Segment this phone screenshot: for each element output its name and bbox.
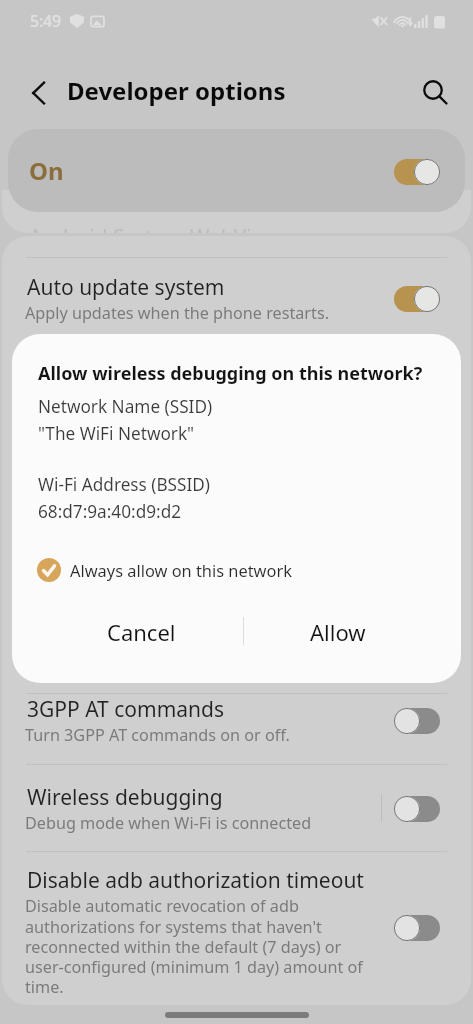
- staticText: Android System WebView: [29, 223, 280, 233]
- staticText: "The WiFi Network": [38, 422, 195, 445]
- button[interactable]: Navigate up: [17, 72, 59, 114]
- staticText: Cancel: [107, 617, 176, 647]
- button[interactable]: 3GPP AT commands: [0, 685, 473, 736]
- button[interactable]: Disable adb authorization timeout: [0, 856, 473, 987]
- staticText: 68:d7:9a:40:d9:d2: [38, 500, 182, 523]
- staticText: Debug mode when Wi-Fi is connected: [25, 812, 375, 834]
- staticText: Wi-Fi Address (BSSID): [38, 473, 211, 496]
- button[interactable]: Allow: [229, 601, 446, 663]
- staticText: Network Name (SSID): [38, 395, 213, 418]
- staticText: Auto update system: [27, 273, 225, 302]
- button[interactable]: Auto update system: [0, 263, 473, 314]
- staticText: Always allow on this network: [70, 559, 292, 581]
- button[interactable]: Wireless debugging: [0, 773, 473, 824]
- staticText: 5:49: [30, 10, 62, 32]
- staticText: Apply updates when the phone restarts.: [25, 302, 375, 324]
- staticText: Disable automatic revocation of adb auth…: [25, 895, 375, 997]
- staticText: Developer options: [67, 74, 286, 107]
- button[interactable]: Always allow on this network: [37, 558, 292, 582]
- button[interactable]: On: [8, 129, 465, 212]
- button[interactable]: Cancel: [26, 601, 257, 663]
- staticText: 3GPP AT commands: [27, 695, 225, 724]
- staticText: On: [29, 154, 64, 187]
- staticText: Allow wireless debugging on this network…: [38, 361, 423, 386]
- staticText: Allow: [310, 617, 366, 647]
- staticText: Turn 3GPP AT commands on or off.: [25, 724, 375, 746]
- staticText: Disable adb authorization timeout: [27, 866, 364, 895]
- button[interactable]: Search: [413, 70, 457, 114]
- staticText: Wireless debugging: [27, 783, 223, 812]
